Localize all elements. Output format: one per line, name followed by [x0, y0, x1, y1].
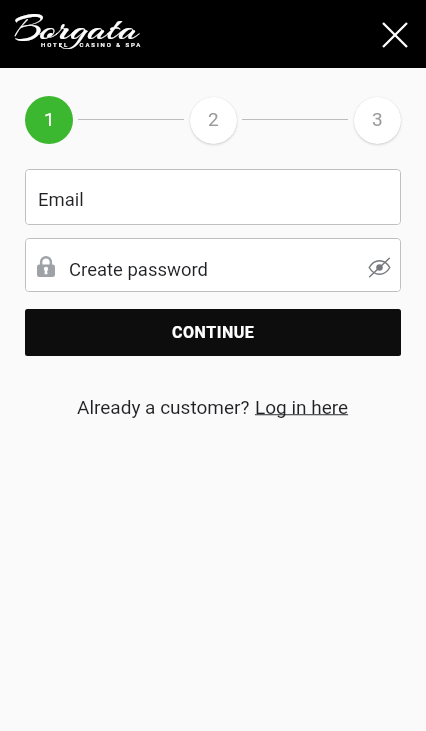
staticText: Email [38, 189, 84, 211]
button[interactable]: Close [372, 12, 417, 57]
button[interactable]: Create password [25, 238, 401, 292]
staticText: Create password [69, 259, 208, 281]
staticText: HOTEL CASINO & SPA [41, 41, 143, 48]
button[interactable]: Log in here [255, 396, 349, 418]
staticText: Borgata [14, 5, 139, 52]
staticText: 2 [208, 108, 219, 130]
button[interactable]: Step 2 [190, 97, 237, 144]
staticText: 3 [372, 108, 383, 130]
button[interactable]: CONTINUE [25, 309, 401, 356]
button[interactable]: Step 3 [354, 97, 401, 144]
button[interactable]: Step 1 [25, 96, 73, 144]
staticText: CONTINUE [172, 323, 255, 342]
staticText: Already a customer? [77, 396, 255, 418]
staticText: Log in here [255, 396, 349, 418]
button[interactable]: Show password [363, 251, 395, 283]
button[interactable]: Email [25, 169, 401, 225]
staticText: 1 [44, 108, 55, 130]
